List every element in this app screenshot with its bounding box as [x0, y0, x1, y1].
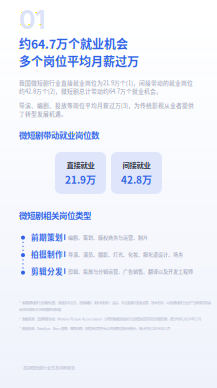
- staticText: 前期策划: [31, 232, 63, 243]
- button[interactable]: 间接就业: [111, 152, 162, 194]
- staticText: 微短剧带动就业岗位数: [19, 129, 99, 141]
- staticText: * 数据来源：DataEye、Boss直聘、智联招聘、前程无忧等平台公开招聘信息…: [19, 326, 170, 331]
- staticText: 导演、编剧、投放等岗位平均月薪过万[3]，为传统影视从业者提供了转型发展机遇。: [19, 101, 194, 118]
- staticText: 编剧、策划、版权商务与运营、制片: [68, 233, 148, 241]
- staticText: 多个岗位平均月薪过万: [19, 52, 139, 70]
- staticText: 剪辑分发: [31, 266, 63, 277]
- staticText: 21.9万: [65, 172, 96, 186]
- staticText: 间接就业: [122, 159, 150, 170]
- staticText: 拍摄制作: [31, 249, 63, 260]
- staticText: 微短剧相关岗位类型: [19, 209, 91, 221]
- staticText: 约64.7万个就业机会: [19, 35, 128, 52]
- staticText: 我国微短剧行业直接就业岗位为21.9万个[1]，间接带动的就业岗位约42.8万个…: [19, 79, 193, 95]
- staticText: 42.8万: [121, 172, 152, 186]
- staticText: 直接就业: [66, 159, 94, 170]
- staticText: 2024微短剧行业生态洞察报告: [23, 365, 75, 371]
- button[interactable]: 直接就业: [55, 152, 106, 194]
- staticText: 01: [19, 5, 45, 35]
- staticText: * 根据微短剧行业调研估算，渠道及平台方，涵盖编剧、制片和经纪、演员、平台直播与…: [19, 300, 211, 312]
- staticText: 导演、演员、摄影、灯光、化妆、服化道设计、场务: [68, 250, 183, 258]
- staticText: 剪辑、投放与分销运营、广告销售、翻译以及开发工程师: [68, 267, 193, 275]
- staticText: * 数据来源：美国电影协会（Motion Picture Association…: [19, 316, 201, 321]
